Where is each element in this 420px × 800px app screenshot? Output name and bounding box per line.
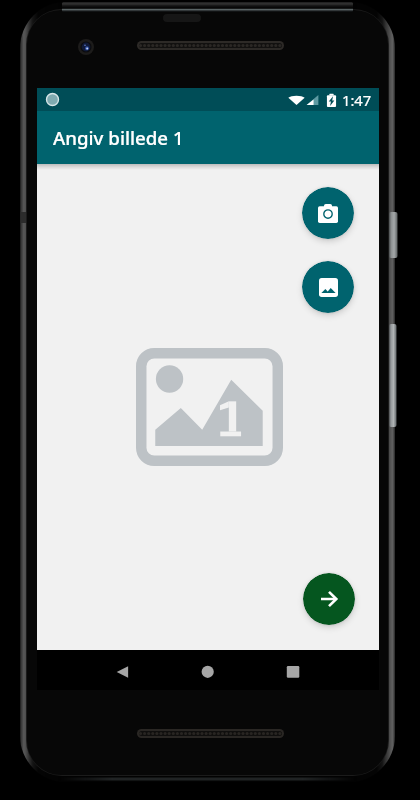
staticText: 1:47: [342, 90, 372, 110]
button[interactable]: Take photo: [302, 187, 354, 239]
staticText: Angiv billede 1: [53, 125, 184, 150]
other: System navigation: [37, 650, 379, 690]
button[interactable]: Next: [303, 573, 355, 625]
button[interactable]: Pick image: [302, 261, 354, 313]
